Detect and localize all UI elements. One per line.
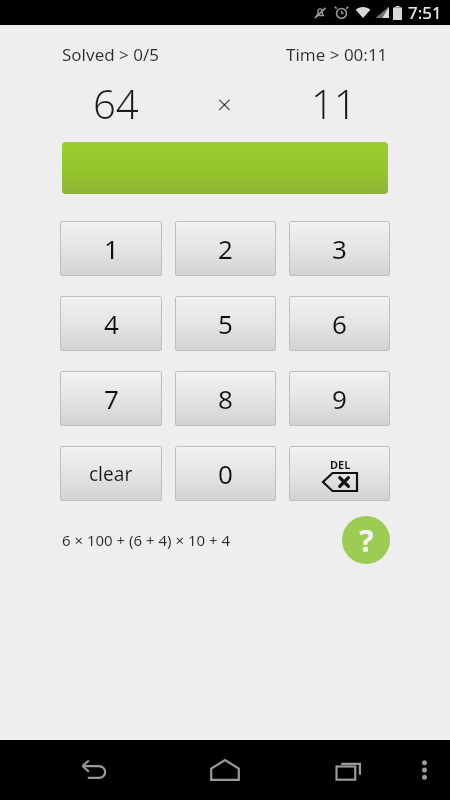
staticText: Time > 00:11 [286, 43, 388, 66]
button[interactable]: 7 [60, 371, 162, 426]
staticText: 7 [104, 381, 119, 416]
button[interactable]: 4 [60, 296, 162, 351]
staticText: 6 × 100 + (6 + 4) × 10 + 4 [62, 530, 342, 550]
button[interactable] [62, 142, 388, 194]
staticText: clear [89, 461, 133, 487]
staticText: 2 [218, 231, 233, 266]
staticText: × [217, 86, 232, 121]
staticText: Solved > 0/5 [62, 43, 160, 66]
button[interactable]: 1 [60, 221, 162, 276]
staticText: 3 [332, 231, 347, 266]
staticText: 7:51 [408, 1, 442, 24]
staticText: 9 [332, 381, 347, 416]
button[interactable]: Help [342, 516, 390, 564]
staticText: 1 [104, 231, 119, 266]
staticText: 5 [218, 306, 233, 341]
button[interactable]: clear [60, 446, 162, 501]
staticText: DEL [330, 457, 351, 472]
staticText: ? [359, 520, 374, 561]
button[interactable]: 0 [175, 446, 276, 501]
button[interactable]: More options [406, 752, 442, 788]
button[interactable]: Back [70, 747, 116, 793]
staticText: 0 [218, 456, 233, 491]
button[interactable]: Home [200, 745, 250, 795]
staticText: 11 [311, 76, 357, 130]
staticText: 4 [104, 306, 119, 341]
button[interactable]: 8 [175, 371, 276, 426]
staticText: 8 [218, 381, 233, 416]
button[interactable]: 9 [289, 371, 390, 426]
button[interactable]: 2 [175, 221, 276, 276]
button[interactable]: 3 [289, 221, 390, 276]
button[interactable]: 6 [289, 296, 390, 351]
button[interactable]: Delete [289, 446, 390, 501]
button[interactable]: 5 [175, 296, 276, 351]
button[interactable]: Recent apps [326, 747, 372, 793]
staticText: 64 [93, 76, 139, 130]
staticText: 6 [332, 306, 347, 341]
